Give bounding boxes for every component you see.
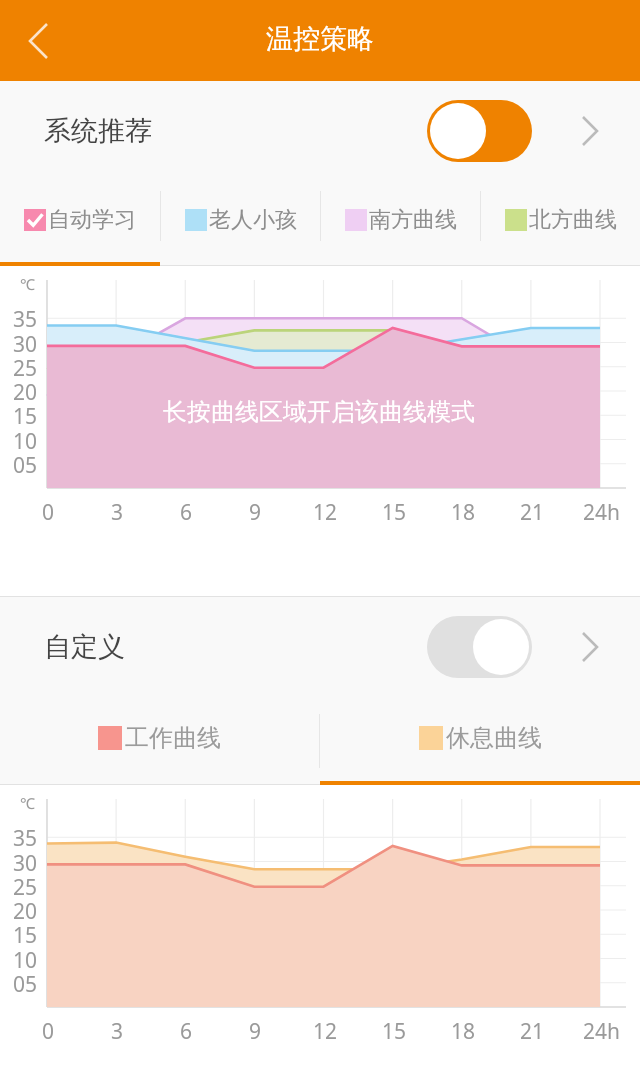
button[interactable]: 北方曲线 [481,181,640,266]
staticText: 6 [180,1017,193,1046]
staticText: 15 [382,1017,407,1046]
staticText: 12 [313,1017,338,1046]
staticText: 自定义 [44,630,125,664]
staticText: 温控策略 [266,22,374,56]
staticText: 6 [180,498,193,527]
staticText: 南方曲线 [369,206,457,234]
staticText: 工作曲线 [125,723,221,753]
staticText: 9 [249,498,262,527]
button[interactable]: Back [8,13,64,69]
staticText: 05 [13,970,38,999]
staticText: 15 [13,921,38,950]
staticText: 自动学习 [48,206,136,234]
staticText: 25 [13,873,38,902]
staticText: 休息曲线 [446,723,542,753]
button[interactable]: More [568,625,612,669]
staticText: 35 [13,305,38,334]
staticText: 24h [583,1017,621,1046]
staticText: ℃ [20,274,35,294]
button[interactable]: 自定义 [0,597,640,697]
button[interactable]: ℃ [0,266,640,596]
button[interactable]: Toggle on [427,100,532,162]
staticText: 30 [13,849,38,878]
staticText: 10 [13,427,38,456]
staticText: 15 [13,402,38,431]
staticText: 21 [520,498,545,527]
staticText: 0 [42,498,55,527]
staticText: 10 [13,946,38,975]
staticText: 系统推荐 [44,114,152,148]
staticText: 25 [13,354,38,383]
staticText: 12 [313,498,338,527]
staticText: 05 [13,451,38,480]
staticText: 35 [13,824,38,853]
staticText: 9 [249,1017,262,1046]
staticText: 长按曲线区域开启该曲线模式 [163,397,475,427]
staticText: 18 [451,498,476,527]
staticText: 20 [13,897,38,926]
staticText: 北方曲线 [529,206,617,234]
button[interactable]: 南方曲线 [321,181,480,266]
button[interactable]: Toggle off [427,616,532,678]
button[interactable]: 老人小孩 [161,181,320,266]
button[interactable]: 系统推荐 [0,81,640,181]
staticText: 18 [451,1017,476,1046]
button[interactable]: 休息曲线 [320,697,640,785]
staticText: 20 [13,378,38,407]
button[interactable]: 工作曲线 [0,697,319,785]
staticText: 老人小孩 [209,206,297,234]
staticText: 15 [382,498,407,527]
button[interactable]: More [568,109,612,153]
staticText: 0 [42,1017,55,1046]
staticText: 3 [111,1017,124,1046]
staticText: 3 [111,498,124,527]
button[interactable]: 自动学习 [0,181,160,266]
staticText: ℃ [20,793,35,813]
staticText: 21 [520,1017,545,1046]
staticText: 24h [583,498,621,527]
staticText: 30 [13,330,38,359]
